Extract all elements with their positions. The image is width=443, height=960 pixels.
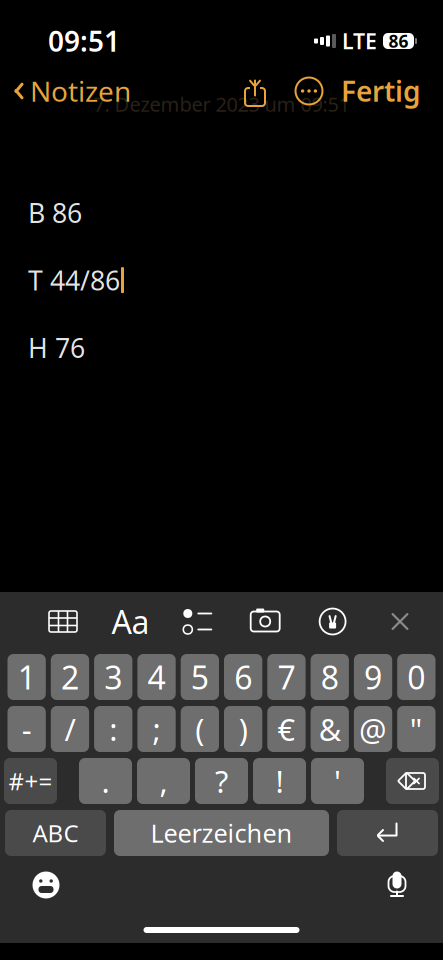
staticText: ) bbox=[239, 709, 248, 749]
button[interactable]: Zeilenumbruch bbox=[337, 810, 438, 856]
staticText: ( bbox=[195, 709, 204, 749]
staticText: T 44/86 bbox=[28, 262, 120, 298]
button[interactable]: . bbox=[79, 758, 132, 804]
button[interactable]: Notizen bbox=[0, 64, 131, 118]
button[interactable]: 6 bbox=[224, 654, 262, 700]
staticText: " bbox=[410, 709, 423, 749]
button[interactable]: @ bbox=[354, 706, 392, 752]
staticText: B 86 bbox=[28, 195, 82, 230]
button[interactable]: 1 bbox=[7, 654, 46, 700]
staticText: 9 bbox=[364, 656, 382, 698]
staticText: : bbox=[109, 709, 117, 749]
button[interactable]: Emoji bbox=[24, 863, 68, 907]
staticText: / bbox=[64, 709, 75, 749]
button[interactable]: #+= bbox=[4, 758, 57, 804]
staticText: @ bbox=[359, 709, 387, 749]
button[interactable]: , bbox=[137, 758, 190, 804]
button[interactable]: ABC bbox=[5, 810, 106, 856]
staticText: ? bbox=[215, 761, 228, 801]
button[interactable]: 3 bbox=[94, 654, 132, 700]
button[interactable]: Tabelle bbox=[42, 600, 84, 642]
staticText: - bbox=[22, 709, 32, 749]
button[interactable]: & bbox=[311, 706, 349, 752]
button[interactable]: 8 bbox=[311, 654, 349, 700]
button[interactable]: Checkliste bbox=[177, 600, 219, 642]
button[interactable]: Format bbox=[109, 600, 151, 642]
button[interactable]: Teilen bbox=[235, 71, 275, 111]
staticText: , bbox=[159, 761, 167, 801]
staticText: Leerzeichen bbox=[150, 816, 292, 850]
staticText: Fertig bbox=[341, 72, 421, 110]
button[interactable]: 5 bbox=[181, 654, 219, 700]
button[interactable]: ' bbox=[311, 758, 364, 804]
button[interactable]: Leerzeichen bbox=[114, 810, 329, 856]
staticText: 5 bbox=[191, 656, 209, 698]
button[interactable]: - bbox=[7, 706, 46, 752]
staticText: ! bbox=[275, 761, 283, 801]
staticText: 4 bbox=[147, 656, 165, 698]
staticText: 8 bbox=[321, 656, 339, 698]
button[interactable]: Markierung bbox=[312, 600, 354, 642]
staticText: ; bbox=[152, 709, 160, 749]
button[interactable]: 7 bbox=[267, 654, 306, 700]
button[interactable]: ; bbox=[137, 706, 176, 752]
staticText: & bbox=[319, 709, 341, 749]
button[interactable]: ( bbox=[181, 706, 219, 752]
button[interactable]: 9 bbox=[354, 654, 392, 700]
button[interactable]: Diktat bbox=[375, 863, 419, 907]
button[interactable]: Fertig bbox=[331, 64, 431, 118]
staticText: 7. Dezember 2023 um 09:51 bbox=[93, 91, 349, 117]
staticText: 1 bbox=[18, 656, 36, 698]
staticText: ' bbox=[334, 761, 341, 801]
staticText: 6 bbox=[234, 656, 252, 698]
button[interactable]: 0 bbox=[397, 654, 435, 700]
staticText: . bbox=[101, 761, 109, 801]
button[interactable]: Kamera bbox=[244, 600, 286, 642]
button[interactable]: Weitere Optionen bbox=[287, 69, 331, 113]
button[interactable]: " bbox=[397, 706, 435, 752]
staticText: #+= bbox=[8, 765, 52, 797]
staticText: 3 bbox=[104, 656, 122, 698]
button[interactable]: 2 bbox=[51, 654, 89, 700]
staticText: 0 bbox=[407, 656, 425, 698]
button[interactable]: € bbox=[267, 706, 306, 752]
staticText: 86 bbox=[388, 29, 408, 52]
button[interactable]: 4 bbox=[137, 654, 176, 700]
staticText: 09:51 bbox=[48, 22, 120, 60]
staticText: Notizen bbox=[30, 72, 131, 110]
staticText: 7 bbox=[277, 656, 295, 698]
button[interactable]: ! bbox=[253, 758, 306, 804]
button[interactable]: / bbox=[51, 706, 89, 752]
button[interactable]: Löschen bbox=[386, 758, 439, 804]
staticText: H 76 bbox=[28, 330, 85, 365]
button[interactable]: ) bbox=[224, 706, 262, 752]
staticText: LTE bbox=[342, 27, 377, 55]
button[interactable]: Schließen bbox=[379, 600, 421, 642]
staticText: ABC bbox=[32, 817, 78, 849]
button[interactable]: : bbox=[94, 706, 132, 752]
button[interactable]: ? bbox=[195, 758, 248, 804]
staticText: 2 bbox=[61, 656, 79, 698]
staticText: Aa bbox=[111, 600, 149, 643]
staticText: € bbox=[277, 709, 295, 749]
